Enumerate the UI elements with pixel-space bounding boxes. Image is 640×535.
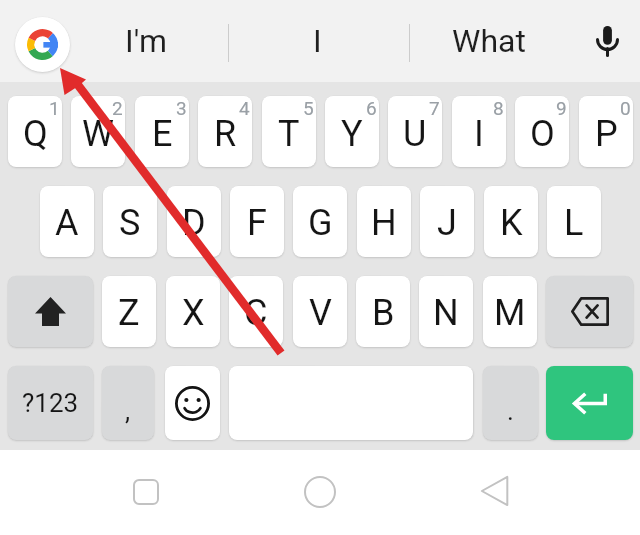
button[interactable]: O xyxy=(515,96,569,167)
staticText: Z xyxy=(118,292,140,334)
staticText: Q xyxy=(23,113,48,155)
button[interactable]: M xyxy=(483,276,537,347)
button[interactable]: U xyxy=(388,96,442,167)
staticText: O xyxy=(530,113,555,155)
button[interactable]: Y xyxy=(325,96,379,167)
button[interactable]: I xyxy=(452,96,506,167)
button[interactable]: Recent apps xyxy=(133,479,159,505)
button[interactable]: Z xyxy=(102,276,156,347)
button[interactable]: G xyxy=(293,186,347,257)
staticText: , xyxy=(125,396,131,426)
staticText: I'm xyxy=(125,22,168,60)
staticText: 9 xyxy=(556,97,567,119)
staticText: G xyxy=(308,202,333,244)
staticText: 8 xyxy=(493,97,504,119)
staticText: I xyxy=(474,113,484,155)
staticText: I xyxy=(313,22,322,60)
button[interactable]: R xyxy=(198,96,252,167)
button[interactable]: D xyxy=(167,186,221,257)
button[interactable]: L xyxy=(547,186,601,257)
button[interactable]: I'm xyxy=(80,0,213,82)
button[interactable]: C xyxy=(229,276,283,347)
button[interactable]: V xyxy=(293,276,347,347)
staticText: . xyxy=(507,396,514,426)
button[interactable]: I xyxy=(228,0,407,82)
staticText: M xyxy=(494,292,526,334)
staticText: U xyxy=(403,113,427,155)
button[interactable]: N xyxy=(419,276,473,347)
staticText: 5 xyxy=(303,97,314,119)
staticText: B xyxy=(372,292,395,334)
button[interactable]: ?123 xyxy=(8,366,93,440)
button[interactable]: K xyxy=(484,186,538,257)
button[interactable]: H xyxy=(357,186,411,257)
button[interactable]: X xyxy=(166,276,220,347)
staticText: J xyxy=(437,202,457,244)
button[interactable]: Backspace xyxy=(546,276,633,347)
staticText: 3 xyxy=(176,97,187,119)
staticText: H xyxy=(371,202,397,244)
staticText: What xyxy=(452,22,526,60)
staticText: L xyxy=(564,202,584,244)
button[interactable]: Enter xyxy=(546,366,633,440)
button[interactable]: E xyxy=(135,96,189,167)
button[interactable]: What xyxy=(410,0,567,82)
button[interactable]: S xyxy=(103,186,157,257)
button[interactable]: F xyxy=(230,186,284,257)
staticText: Y xyxy=(341,113,363,155)
staticText: V xyxy=(309,292,332,334)
button[interactable]: A xyxy=(40,186,94,257)
staticText: 4 xyxy=(239,97,250,119)
staticText: A xyxy=(55,202,79,244)
button[interactable]: Google Search xyxy=(15,17,70,72)
button[interactable]: Voice input xyxy=(575,0,640,82)
staticText: S xyxy=(119,202,141,244)
button[interactable]: P xyxy=(579,96,633,167)
staticText: 0 xyxy=(620,97,631,119)
button[interactable]: Home xyxy=(304,476,336,508)
staticText: P xyxy=(595,113,618,155)
staticText: X xyxy=(182,292,205,334)
staticText: E xyxy=(152,113,173,155)
button[interactable]: Back xyxy=(481,476,509,506)
button[interactable]: . xyxy=(483,366,538,440)
staticText: F xyxy=(247,202,267,244)
staticText: W xyxy=(82,113,114,155)
staticText: 2 xyxy=(112,97,123,119)
staticText: 7 xyxy=(429,97,440,119)
staticText: N xyxy=(433,292,459,334)
staticText: C xyxy=(244,292,268,334)
staticText: T xyxy=(278,113,300,155)
button[interactable]: Shift xyxy=(8,276,93,347)
staticText: 6 xyxy=(366,97,377,119)
staticText: K xyxy=(500,202,523,244)
staticText: R xyxy=(214,113,237,155)
staticText: ?123 xyxy=(22,388,79,418)
button[interactable]: Q xyxy=(8,96,62,167)
button[interactable]: , xyxy=(102,366,154,440)
button[interactable]: T xyxy=(262,96,316,167)
staticText: D xyxy=(182,202,206,244)
button[interactable]: W xyxy=(71,96,125,167)
staticText: 1 xyxy=(49,97,60,119)
button[interactable]: Emoji xyxy=(165,366,220,440)
button[interactable]: B xyxy=(356,276,410,347)
button[interactable]: J xyxy=(420,186,474,257)
